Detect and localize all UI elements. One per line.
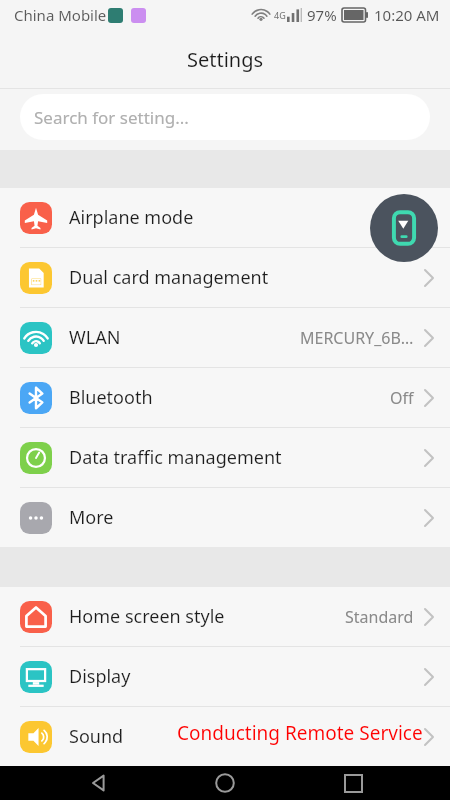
staticText: MERCURY_6B… <box>300 327 414 349</box>
staticText: Off <box>390 387 414 409</box>
staticText: Display <box>69 664 131 689</box>
staticText: Settings <box>187 46 264 73</box>
staticText: Conducting Remote Service <box>177 720 423 746</box>
button[interactable]: Remote service <box>370 194 438 262</box>
button[interactable]: Display <box>0 647 450 706</box>
staticText: Home screen style <box>69 604 225 629</box>
button[interactable]: Home screen style <box>0 587 450 646</box>
staticText: 97% <box>307 5 337 25</box>
button[interactable]: Search for setting... <box>20 94 430 140</box>
staticText: Dual card management <box>69 265 269 290</box>
staticText: Standard <box>345 606 414 628</box>
staticText: 4G <box>274 9 286 21</box>
button[interactable]: Back <box>68 766 128 800</box>
staticText: 10:20 AM <box>374 5 440 25</box>
button[interactable]: WLAN <box>0 308 450 367</box>
staticText: Data traffic management <box>69 445 282 470</box>
staticText: Sound <box>69 724 124 749</box>
button[interactable]: Sound <box>0 707 450 766</box>
button[interactable]: Home <box>195 766 255 800</box>
staticText: More <box>69 505 114 530</box>
button[interactable]: Bluetooth <box>0 368 450 427</box>
staticText: China Mobile <box>14 5 107 25</box>
button[interactable]: Dual card management <box>0 248 450 307</box>
staticText: Airplane mode <box>69 205 194 230</box>
button[interactable]: Airplane mode <box>0 188 450 247</box>
staticText: Bluetooth <box>69 385 153 410</box>
staticText: WLAN <box>69 325 121 350</box>
button[interactable]: Recents <box>323 766 383 800</box>
button[interactable]: More <box>0 488 450 547</box>
staticText: Search for setting... <box>34 106 189 129</box>
button[interactable]: Data traffic management <box>0 428 450 487</box>
